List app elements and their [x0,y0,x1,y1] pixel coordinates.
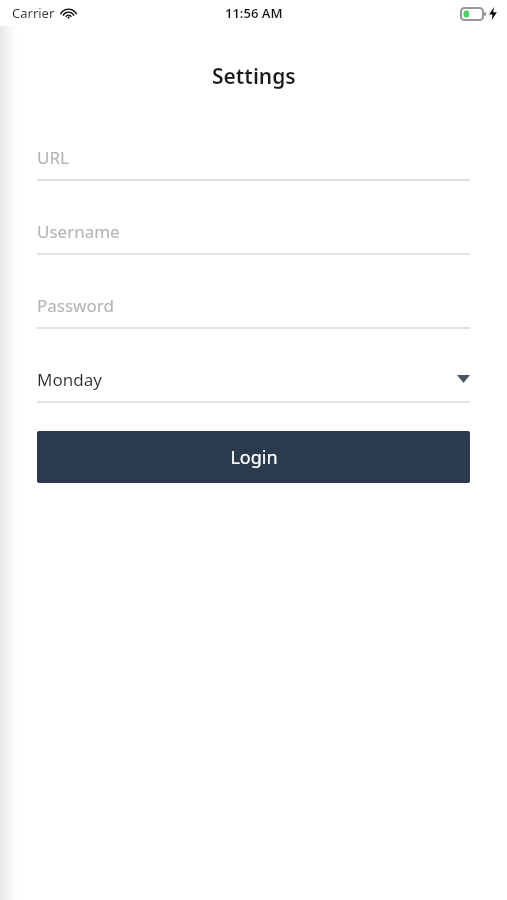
staticText: URL [37,146,69,169]
staticText: Monday [37,368,457,391]
staticText: Username [37,220,120,243]
button[interactable]: Login [37,431,470,483]
button[interactable]: Username [37,217,470,255]
staticText: Login [230,445,278,470]
staticText: Carrier [12,4,55,22]
staticText: 11:56 AM [225,4,283,22]
button[interactable]: URL [37,143,470,181]
staticText: Password [37,294,114,317]
button[interactable]: Select day [37,365,470,403]
staticText: Settings [212,62,296,91]
button[interactable]: Password [37,291,470,329]
